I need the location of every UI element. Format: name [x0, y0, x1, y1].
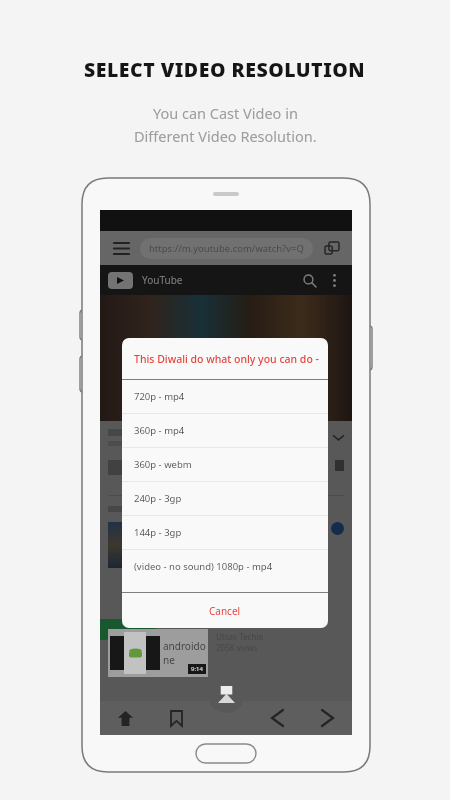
button[interactable]: Cast [322, 238, 342, 258]
staticText: Different Video Resolution. [134, 126, 317, 146]
button[interactable]: Back [252, 701, 302, 735]
button[interactable]: Menu [110, 237, 132, 259]
staticText: 205K views [216, 642, 258, 653]
staticText: YouTube [142, 273, 183, 287]
staticText: 144p - 3gp [134, 526, 182, 539]
staticText: SELECT VIDEO RESOLUTION [84, 56, 366, 83]
button[interactable]: Home [196, 744, 256, 763]
button[interactable]: 360p - mp4 [134, 414, 328, 447]
button[interactable]: 144p - 3gp [134, 516, 328, 549]
staticText: 360p - webm [134, 458, 192, 471]
staticText: androidone [163, 639, 208, 667]
staticText: 360p - mp4 [134, 424, 185, 437]
staticText: Utsav Techie [216, 631, 263, 642]
staticText: 240p - 3gp [134, 492, 182, 505]
staticText: (video - no sound) 1080p - mp4 [134, 560, 273, 573]
button[interactable]: YouTube [108, 272, 133, 289]
button[interactable]: 240p - 3gp [134, 482, 328, 515]
staticText: You can Cast Video in [153, 103, 298, 123]
button[interactable]: 360p - webm [134, 448, 328, 481]
button[interactable]: Forward [302, 701, 352, 735]
staticText: 9:14 [191, 665, 203, 673]
button[interactable]: Search [298, 269, 320, 291]
staticText: This Diwali do what only you can do - [134, 352, 319, 366]
staticText: Cancel [209, 604, 241, 618]
button[interactable]: More options [324, 270, 344, 290]
button[interactable]: 720p - mp4 [134, 380, 328, 413]
button[interactable]: Cancel [122, 593, 328, 628]
staticText: 720p - mp4 [134, 390, 185, 403]
button[interactable]: Home [100, 701, 151, 735]
staticText: https://m.youtube.com/watch?v=Q [149, 242, 304, 255]
button[interactable]: Cast [207, 675, 245, 713]
button[interactable]: https://m.youtube.com/watch?v=Q [140, 238, 313, 259]
button[interactable]: Bookmarks [151, 701, 202, 735]
button[interactable]: (video - no sound) 1080p - mp4 [134, 550, 328, 583]
